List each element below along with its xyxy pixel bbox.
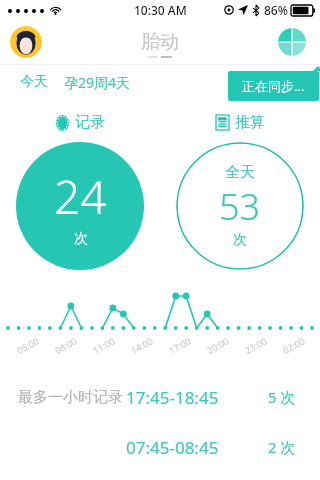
button[interactable]: 全天 [176,142,304,270]
staticText: 10:30 AM [134,2,187,18]
staticText: 24 [54,165,107,228]
staticText: 胎动 [141,30,179,54]
staticText: 20:00 [205,334,231,356]
button[interactable]: 正在同步... [228,71,319,101]
button[interactable]: 今天 [18,69,50,95]
staticText: 07:45-08:45 [126,436,219,459]
staticText: 11:00 [91,334,117,356]
staticText: 最多一小时记录 [18,388,123,407]
staticText: 17:00 [167,334,193,356]
staticText: 正在同步... [242,77,305,95]
staticText: 全天 [225,163,255,182]
staticText: 02:00 [281,334,307,356]
button[interactable]: 07:45-08:45 [0,422,320,472]
staticText: 53 [219,182,261,231]
button[interactable]: 24 [16,142,144,270]
button[interactable]: Profile [10,26,42,58]
button[interactable]: 孕29周4天 [62,69,133,96]
staticText: 86% [264,2,288,18]
staticText: 17:45-18:45 [126,386,219,409]
staticText: 推算 [235,113,265,132]
staticText: 23:00 [243,334,269,356]
staticText: 05:00 [15,334,41,356]
button[interactable]: 推算 [212,109,269,136]
staticText: 记录 [75,113,105,132]
staticText: 2 次 [268,437,296,457]
button[interactable]: 记录 [52,109,109,136]
staticText: 今天 [20,73,48,91]
button[interactable]: 最多一小时记录 [0,372,320,422]
staticText: 14:00 [129,334,155,356]
staticText: 08:00 [53,334,79,356]
staticText: 孕29周4天 [64,73,131,92]
staticText: 5 次 [268,387,296,407]
button[interactable]: Sync [278,28,306,56]
staticText: 次 [233,231,247,249]
staticText: 次 [74,230,88,248]
